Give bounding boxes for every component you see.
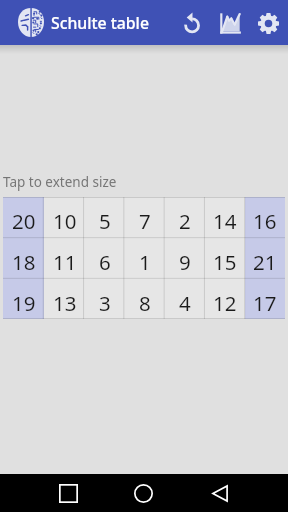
staticText: Tap to extend size <box>3 173 117 191</box>
button[interactable]: 21 <box>245 237 285 278</box>
button[interactable]: 20 <box>3 197 44 237</box>
staticText: Schulte table <box>51 12 149 34</box>
button[interactable]: 2 <box>165 197 205 237</box>
staticText: 12 <box>213 289 237 317</box>
button[interactable]: 14 <box>205 197 245 237</box>
button[interactable]: 18 <box>3 237 44 278</box>
staticText: 2 <box>179 207 191 235</box>
button[interactable]: 11 <box>44 237 85 278</box>
staticText: 11 <box>53 248 77 276</box>
button[interactable]: 7 <box>125 197 165 237</box>
button[interactable]: Restart <box>173 4 211 42</box>
button[interactable]: 10 <box>44 197 85 237</box>
button[interactable]: Recents <box>31 474 106 512</box>
button[interactable]: Home <box>106 474 181 512</box>
button[interactable]: 8 <box>125 278 165 319</box>
button[interactable]: 15 <box>205 237 245 278</box>
staticText: 17 <box>253 289 277 317</box>
staticText: 20 <box>12 207 36 235</box>
button[interactable]: 4 <box>165 278 205 319</box>
button[interactable]: 13 <box>44 278 85 319</box>
button[interactable]: Settings <box>249 4 287 42</box>
staticText: 7 <box>139 207 151 235</box>
staticText: 19 <box>12 289 36 317</box>
button[interactable]: 17 <box>245 278 285 319</box>
staticText: 3 <box>99 289 111 317</box>
button[interactable]: Back <box>181 474 258 512</box>
staticText: 8 <box>139 289 151 317</box>
staticText: 10 <box>53 207 77 235</box>
button[interactable]: 12 <box>205 278 245 319</box>
staticText: 9 <box>179 248 191 276</box>
button[interactable]: 16 <box>245 197 285 237</box>
button[interactable]: 1 <box>125 237 165 278</box>
staticText: 1 <box>139 248 151 276</box>
staticText: 6 <box>99 248 111 276</box>
staticText: 5 <box>99 207 111 235</box>
button[interactable]: 6 <box>85 237 125 278</box>
staticText: 13 <box>53 289 77 317</box>
staticText: 16 <box>253 207 277 235</box>
staticText: 14 <box>213 207 237 235</box>
staticText: 15 <box>213 248 237 276</box>
staticText: 21 <box>253 248 277 276</box>
button[interactable]: 3 <box>85 278 125 319</box>
button[interactable]: 5 <box>85 197 125 237</box>
staticText: 18 <box>12 248 36 276</box>
staticText: 4 <box>179 289 191 317</box>
button[interactable]: 19 <box>3 278 44 319</box>
button[interactable]: 9 <box>165 237 205 278</box>
button[interactable]: Statistics <box>211 4 249 42</box>
